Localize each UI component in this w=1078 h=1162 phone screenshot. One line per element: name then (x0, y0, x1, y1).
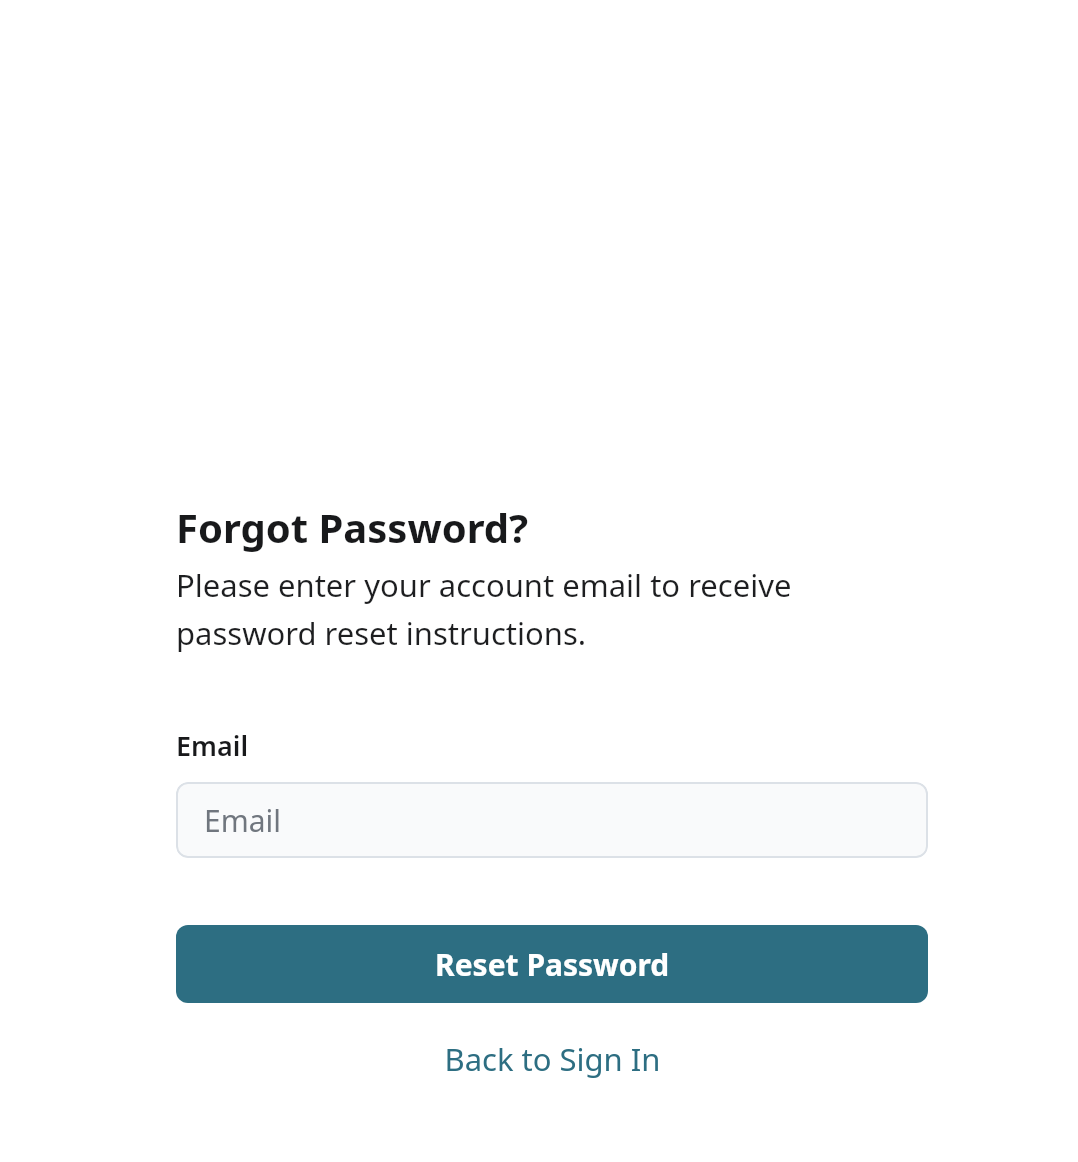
staticText: Please enter your account email to recei… (176, 564, 836, 654)
button[interactable]: Email (176, 782, 928, 858)
staticText: Email (176, 727, 249, 764)
staticText: Reset Password (435, 944, 670, 985)
staticText: Back to Sign In (444, 1038, 661, 1080)
staticText: Email (204, 800, 282, 841)
button[interactable]: Reset Password (176, 925, 928, 1003)
button[interactable]: Back to Sign In (176, 1029, 928, 1089)
staticText: Forgot Password? (176, 500, 529, 554)
